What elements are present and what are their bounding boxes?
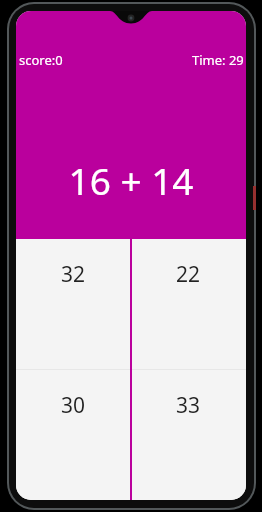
button[interactable]: 22 bbox=[131, 239, 246, 369]
staticText: 33 bbox=[176, 391, 201, 420]
staticText: 16 + 14 bbox=[68, 155, 194, 205]
button[interactable]: 33 bbox=[131, 370, 246, 500]
button[interactable]: 30 bbox=[16, 370, 131, 500]
staticText: score:0 bbox=[19, 51, 63, 69]
staticText: 30 bbox=[61, 391, 86, 420]
staticText: 32 bbox=[61, 260, 86, 289]
button[interactable]: 32 bbox=[16, 239, 131, 369]
staticText: 22 bbox=[176, 260, 201, 289]
staticText: Time: 29 bbox=[192, 51, 244, 69]
